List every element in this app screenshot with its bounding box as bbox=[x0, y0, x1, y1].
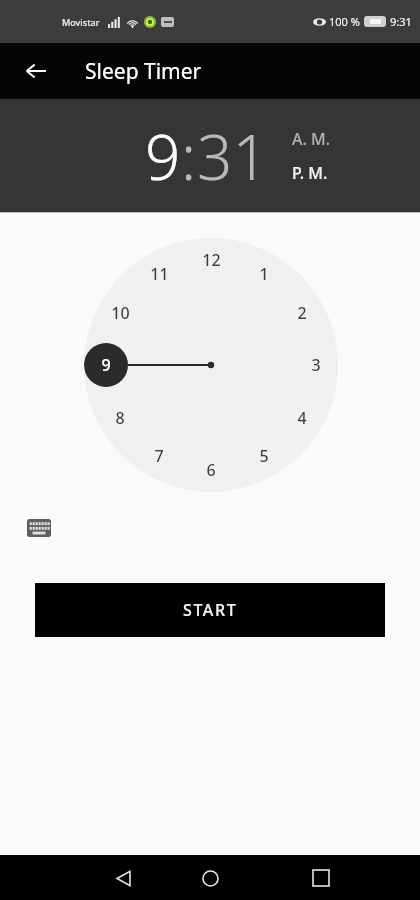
staticText: Movistar bbox=[62, 16, 100, 28]
staticText: 12 bbox=[202, 249, 221, 271]
button[interactable]: A. M. bbox=[292, 128, 331, 150]
staticText: 5 bbox=[259, 445, 269, 467]
button[interactable]: Home bbox=[189, 857, 231, 899]
button[interactable]: START bbox=[35, 583, 385, 637]
staticText: 4 bbox=[297, 407, 307, 429]
button[interactable]: Recent apps bbox=[300, 857, 342, 899]
staticText: 8 bbox=[115, 407, 125, 429]
button[interactable]: Switch to keyboard input bbox=[24, 516, 54, 540]
button[interactable]: P. M. bbox=[292, 162, 328, 184]
staticText: 7 bbox=[154, 445, 164, 467]
button[interactable]: 31 bbox=[197, 114, 268, 198]
staticText: START bbox=[183, 599, 238, 621]
staticText: 100 % bbox=[329, 14, 360, 29]
staticText: 9 bbox=[101, 354, 111, 376]
button[interactable]: Back bbox=[102, 857, 144, 899]
staticText: 1 bbox=[259, 263, 269, 285]
button[interactable]: 1 bbox=[84, 238, 338, 492]
staticText: 9:31 bbox=[390, 14, 412, 29]
staticText: Sleep Timer bbox=[85, 57, 202, 86]
staticText: 2 bbox=[297, 302, 307, 324]
button[interactable]: Back bbox=[14, 49, 58, 93]
staticText: 3 bbox=[311, 354, 321, 376]
staticText: 11 bbox=[150, 263, 169, 285]
staticText: 6 bbox=[206, 459, 216, 481]
button[interactable]: 9 bbox=[145, 114, 181, 198]
staticText: : bbox=[181, 114, 197, 198]
staticText: 10 bbox=[111, 302, 130, 324]
